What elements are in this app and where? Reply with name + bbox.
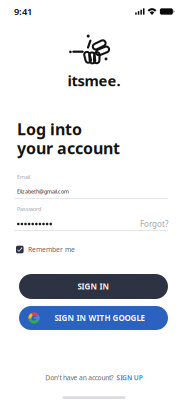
button[interactable]: Forgot?	[140, 219, 168, 229]
button[interactable]: SIGN IN WITH GOOGLE	[19, 306, 168, 330]
staticText: Forgot?	[140, 219, 168, 229]
staticText: SIGN IN	[77, 281, 109, 292]
staticText: SIGN UP	[116, 373, 143, 382]
staticText: Password	[17, 205, 41, 213]
staticText: Email	[17, 173, 30, 181]
staticText: itsmee.	[67, 71, 120, 90]
button[interactable]: SIGN IN	[19, 274, 168, 299]
staticText: Remember me	[28, 245, 75, 254]
staticText: Don't have an account?	[45, 373, 114, 382]
staticText: your account	[17, 137, 120, 159]
button[interactable]: Remember me	[14, 245, 168, 254]
staticText: 9:41	[14, 5, 32, 18]
staticText: SIGN IN WITH GOOGLE	[54, 313, 144, 323]
staticText: Elizabeth@gmail.com	[17, 188, 69, 195]
staticText: Log into	[17, 118, 82, 140]
button[interactable]: SIGN UP	[116, 373, 143, 382]
